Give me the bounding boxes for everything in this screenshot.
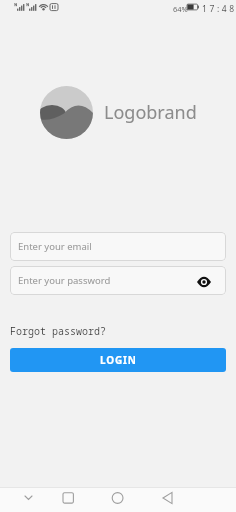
- button[interactable]: [0, 487, 59, 512]
- button[interactable]: Forgot password?: [10, 324, 106, 338]
- button[interactable]: LOGIN: [10, 348, 226, 372]
- button[interactable]: [59, 487, 118, 512]
- button[interactable]: Enter your email: [10, 232, 226, 261]
- button[interactable]: [197, 277, 211, 287]
- button[interactable]: Enter your password: [10, 266, 226, 295]
- staticText: Enter your password: [18, 274, 111, 287]
- button[interactable]: [118, 487, 177, 512]
- staticText: Forgot password?: [10, 324, 106, 338]
- staticText: 17:48: [202, 3, 236, 15]
- staticText: Enter your email: [18, 240, 92, 253]
- staticText: LOGIN: [100, 353, 137, 367]
- staticText: Logobrand: [104, 100, 197, 125]
- staticText: 64%: [173, 4, 188, 14]
- button[interactable]: [177, 487, 236, 512]
